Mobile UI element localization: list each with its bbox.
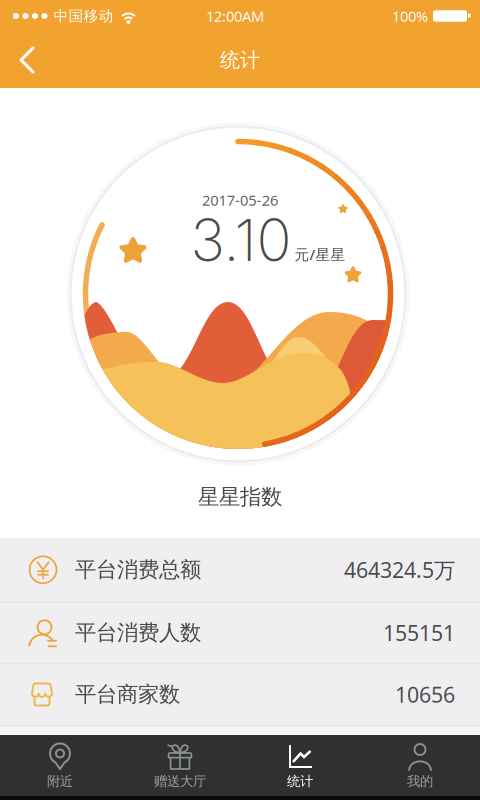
staticText: 元/星星: [294, 245, 345, 264]
staticText: 464324.5万: [344, 556, 455, 584]
staticText: 赠送大厅: [154, 773, 206, 789]
staticText: 2017-05-26: [202, 190, 278, 210]
button[interactable]: 我的: [360, 735, 480, 796]
staticText: 星星指数: [198, 484, 282, 510]
staticText: 155151: [383, 619, 455, 647]
staticText: 统计: [287, 773, 313, 789]
button[interactable]: 赠送大厅: [120, 735, 240, 796]
staticText: 中国移动: [53, 7, 113, 25]
staticText: 3.10: [190, 205, 291, 275]
staticText: 附近: [47, 773, 73, 789]
button[interactable]: 附近: [0, 735, 120, 796]
staticText: 统计: [220, 48, 260, 72]
button[interactable]: 统计: [240, 735, 360, 796]
staticText: 10656: [395, 680, 455, 709]
staticText: 平台商家数: [75, 681, 180, 708]
staticText: 100%: [392, 6, 428, 26]
button[interactable]: Back: [6, 35, 50, 85]
staticText: 平台消费总额: [75, 557, 201, 583]
staticText: 平台消费人数: [75, 620, 201, 646]
staticText: 12:00AM: [206, 6, 264, 26]
staticText: 我的: [407, 773, 433, 789]
